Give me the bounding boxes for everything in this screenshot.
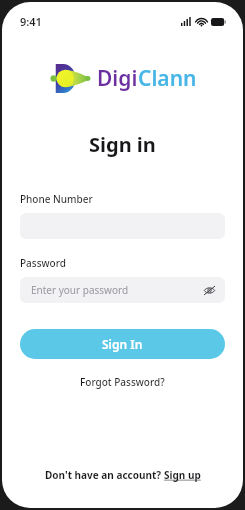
button[interactable]: Sign up: [164, 468, 201, 482]
staticText: Sign up: [164, 468, 201, 482]
staticText: Phone Number: [20, 192, 93, 206]
button[interactable]: Show password: [201, 282, 218, 299]
staticText: Sign in: [89, 131, 156, 158]
staticText: Password: [20, 256, 66, 270]
staticText: Forgot Password?: [80, 375, 165, 389]
staticText: Don't have an account?: [45, 468, 164, 482]
staticText: Enter your password: [31, 283, 129, 297]
staticText: Digi: [97, 64, 138, 93]
staticText: 9:41: [20, 14, 42, 29]
button[interactable]: Sign In: [20, 329, 225, 359]
staticText: Sign In: [102, 336, 143, 352]
staticText: Clann: [138, 64, 197, 93]
button[interactable]: Forgot Password?: [74, 373, 171, 391]
button[interactable]: Enter your password: [20, 277, 225, 303]
